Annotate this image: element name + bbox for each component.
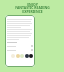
button[interactable]: Theme colour	[20, 54, 24, 58]
button[interactable]	[7, 45, 33, 47]
button[interactable]: Theme colour	[16, 54, 20, 58]
button[interactable]: Theme colour	[29, 54, 33, 58]
button[interactable]: Theme colour	[11, 54, 15, 58]
button[interactable]: Theme colour	[5, 15, 35, 67]
staticText: ENJOY FANTASTIC READING EXPERIENCE	[15, 2, 50, 14]
button[interactable]: Theme colour	[25, 54, 29, 58]
button[interactable]	[7, 49, 33, 51]
